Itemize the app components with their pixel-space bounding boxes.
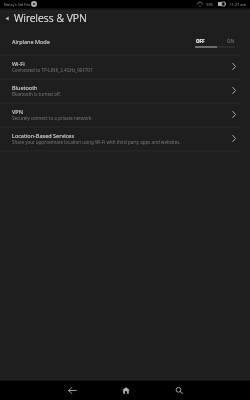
staticText: Nancy's 3rd Fire [4, 2, 31, 7]
staticText: Share your approximate location using Wi… [12, 139, 181, 145]
staticText: Securely connect to a private network. [12, 115, 93, 121]
button[interactable]: Search [152, 381, 205, 400]
button[interactable]: Location-Based Services [0, 128, 250, 152]
staticText: Location-Based Services [12, 132, 75, 139]
staticText: Bluetooth [12, 84, 38, 91]
button[interactable]: Wi-Fi [0, 56, 250, 80]
staticText: Wi-Fi [12, 60, 25, 67]
staticText: Wireless & VPN [14, 11, 87, 25]
staticText: Bluetooth is turned off. [12, 91, 61, 97]
button[interactable]: Bluetooth [0, 80, 250, 104]
button[interactable]: Airplane Mode [0, 29, 250, 56]
staticText: 11:21 am [229, 2, 247, 7]
staticText: VPN [12, 108, 23, 115]
button[interactable]: VPN [0, 104, 250, 128]
staticText: ON [227, 38, 235, 44]
staticText: Connected to TP-LINK_2.4GHz_90F707 [12, 67, 93, 73]
staticText: Airplane Mode [12, 38, 50, 45]
button[interactable]: Home [99, 381, 152, 400]
button[interactable]: Back [0, 8, 13, 28]
button[interactable]: Back [46, 381, 99, 400]
staticText: 33% [206, 2, 213, 7]
staticText: OFF [196, 38, 205, 44]
